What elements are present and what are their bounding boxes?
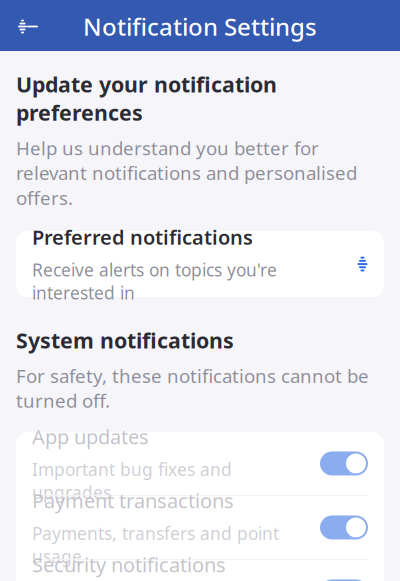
button[interactable]: Preferred notifications: [16, 231, 384, 297]
button[interactable]: App updates: [16, 432, 384, 495]
button[interactable]: Back: [7, 5, 49, 47]
staticText: Receive alerts on topics you're interest…: [32, 258, 277, 304]
staticText: App updates: [32, 423, 149, 450]
staticText: Security notifications: [32, 551, 226, 578]
staticText: Payment transactions: [32, 487, 234, 514]
button[interactable]: Security notifications: [16, 560, 384, 581]
staticText: Notification Settings: [83, 11, 317, 42]
staticText: Help us understand you better for releva…: [16, 136, 357, 210]
staticText: Preferred notifications: [32, 224, 253, 250]
staticText: Update your notification preferences: [16, 70, 277, 127]
staticText: For safety, these notifications cannot b…: [16, 363, 369, 413]
staticText: System notifications: [16, 326, 234, 354]
staticText: Important bug fixes and upgrades: [32, 458, 232, 504]
button[interactable]: Payment transactions: [16, 496, 384, 559]
staticText: Payments, transfers and point usage: [32, 522, 279, 568]
